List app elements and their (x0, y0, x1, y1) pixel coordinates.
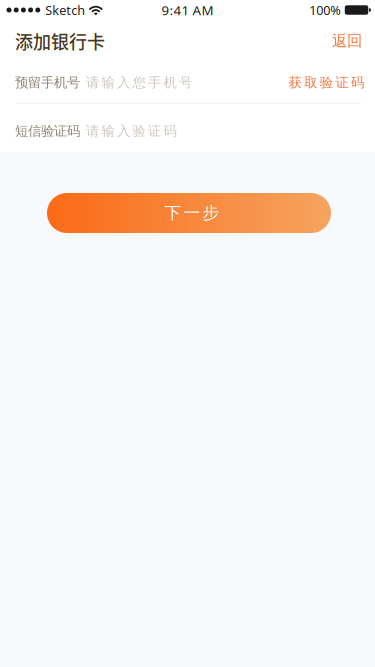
staticText: 添加银行卡 (15, 28, 105, 54)
staticText: Sketch (45, 1, 85, 19)
staticText: 请输入您手机号 (86, 74, 192, 91)
button[interactable]: 下一步 (0, 193, 375, 233)
staticText: 下一步 (164, 202, 219, 223)
button[interactable]: 获取验证码 (279, 65, 364, 100)
staticText: 9:41 AM (161, 1, 213, 19)
staticText: 返回 (332, 31, 362, 51)
staticText: 100% (309, 1, 341, 19)
staticText: 请输入验证码 (86, 123, 176, 139)
staticText: 短信验证码 (15, 123, 80, 139)
staticText: 预留手机号 (15, 74, 80, 91)
button[interactable]: 返回 (320, 23, 362, 59)
staticText: 获取验证码 (289, 74, 364, 91)
